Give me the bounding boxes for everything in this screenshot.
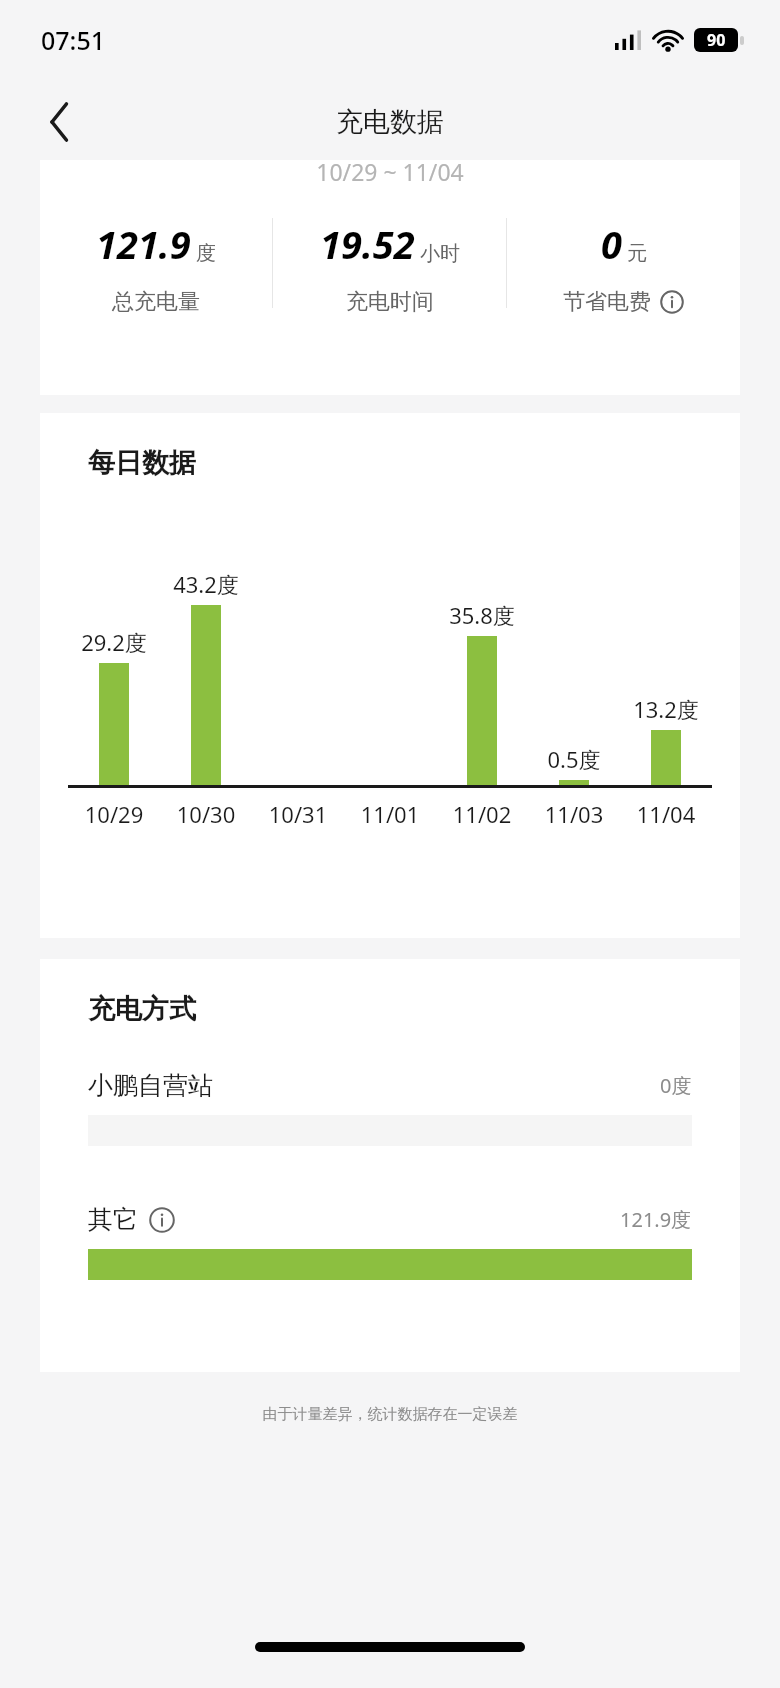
button[interactable]: Back	[32, 94, 88, 150]
staticText: 每日数据	[88, 446, 196, 480]
staticText: 充电时间	[346, 288, 434, 316]
staticText: 总充电量	[112, 288, 200, 316]
staticText: 元	[627, 241, 647, 266]
staticText: 07:51	[41, 23, 106, 57]
staticText: 度	[196, 241, 216, 266]
staticText: 10/29 ~ 11/04	[316, 156, 464, 187]
staticText: 节省电费	[563, 288, 651, 316]
staticText: 121.9	[96, 218, 191, 270]
staticText: 11/03	[528, 799, 620, 829]
button[interactable]: 其它	[88, 1204, 692, 1280]
staticText: 小时	[420, 241, 460, 266]
staticText: 0	[601, 218, 622, 270]
staticText: 11/01	[344, 799, 436, 829]
other: 其它说明	[148, 1206, 176, 1234]
button[interactable]: 小鹏自营站	[88, 1070, 692, 1146]
staticText: 10/30	[160, 799, 252, 829]
staticText: 35.8度	[449, 600, 515, 630]
staticText: 其它	[88, 1204, 138, 1235]
staticText: 10/29	[68, 799, 160, 829]
staticText: 90	[707, 29, 726, 51]
staticText: 由于计量差异，统计数据存在一定误差	[0, 1405, 780, 1424]
staticText: 0.5度	[547, 744, 601, 774]
staticText: 11/02	[436, 799, 528, 829]
staticText: 小鹏自营站	[88, 1070, 213, 1101]
staticText: 121.9度	[620, 1206, 692, 1233]
staticText: 19.52	[320, 218, 415, 270]
staticText: 43.2度	[173, 569, 239, 599]
staticText: 充电方式	[88, 992, 196, 1026]
staticText: 29.2度	[81, 627, 147, 657]
button[interactable]: 节省电费说明	[659, 289, 685, 315]
staticText: 10/31	[252, 799, 344, 829]
staticText: 充电数据	[336, 105, 444, 139]
staticText: 0度	[660, 1072, 692, 1099]
staticText: 13.2度	[633, 694, 699, 724]
staticText: 11/04	[620, 799, 712, 829]
